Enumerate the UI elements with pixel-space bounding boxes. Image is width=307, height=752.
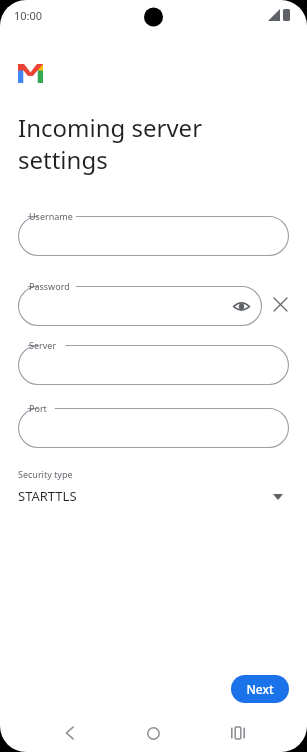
staticText: Security type [18,468,73,480]
staticText: Next [246,681,274,697]
button[interactable]: Recent apps [224,719,252,747]
other: Gmail [18,64,43,83]
button[interactable]: Port [18,408,289,448]
button[interactable]: Home [139,719,167,747]
staticText: Incoming server settings [18,111,278,176]
button[interactable]: Clear password [267,291,293,317]
button[interactable]: Next [231,675,289,703]
button[interactable]: Security type [0,462,307,512]
button[interactable]: Show password [226,291,256,321]
staticText: Password [29,280,70,292]
button[interactable]: Server [18,345,289,385]
staticText: 10:00 [14,8,43,23]
button[interactable]: Username [18,216,289,256]
staticText: Username [29,210,73,222]
button[interactable]: Back [56,719,84,747]
staticText: Server [29,339,57,351]
button[interactable]: Password [18,286,262,326]
staticText: Port [29,402,47,414]
staticText: STARTTLS [18,487,77,505]
